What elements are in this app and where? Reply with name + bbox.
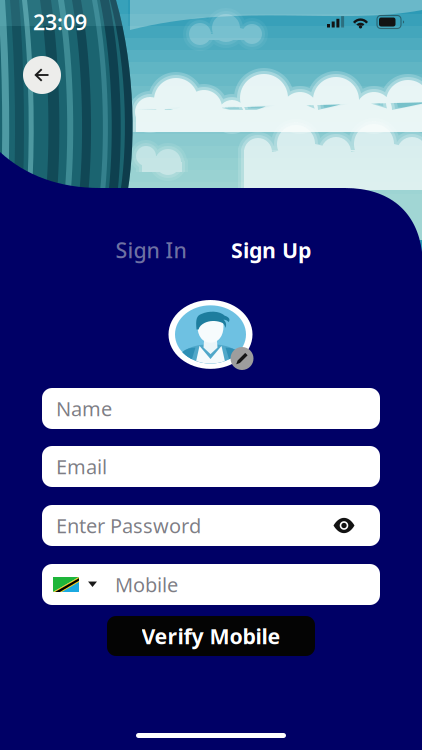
button[interactable]: Sign Up [213, 236, 329, 264]
button[interactable]: Verify Mobile [107, 616, 315, 656]
button[interactable]: Back [21, 56, 63, 94]
button[interactable]: Change profile photo [168, 300, 253, 371]
staticText: Verify Mobile [141, 622, 280, 650]
staticText: 23:09 [33, 8, 87, 36]
staticText: Name [56, 395, 112, 422]
button[interactable]: Select country code [53, 569, 97, 599]
button[interactable]: Sign In [93, 236, 209, 264]
staticText: Email [56, 453, 107, 480]
button[interactable]: Show password [331, 512, 357, 538]
staticText: Sign In [115, 236, 186, 264]
staticText: Enter Password [56, 512, 201, 539]
staticText: Sign Up [231, 236, 311, 264]
staticText: Mobile [115, 571, 178, 598]
